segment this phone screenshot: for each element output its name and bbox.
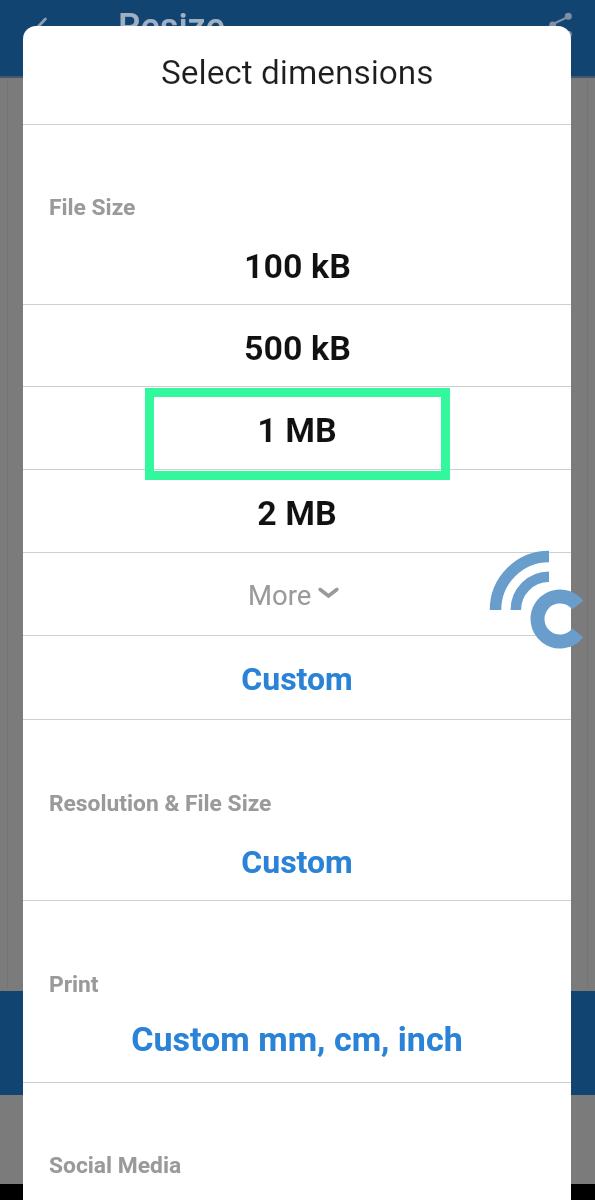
button[interactable]: 100 kB: [23, 125, 571, 304]
staticText: File Size: [49, 194, 136, 221]
staticText: 100 kB: [244, 246, 351, 286]
button[interactable]: Custom: [23, 720, 571, 900]
staticText: 1 MB: [257, 410, 337, 450]
button[interactable]: Custom mm, cm, inch: [23, 901, 571, 1082]
staticText: Resize: [118, 6, 225, 48]
staticText: Print: [49, 971, 99, 998]
staticText: Custom mm, cm, inch: [131, 1019, 463, 1059]
staticText: Custom: [241, 660, 353, 698]
staticText: Social Media: [49, 1152, 182, 1179]
button[interactable]: 500 kB: [23, 305, 571, 386]
button[interactable]: 2 MB: [23, 470, 571, 552]
staticText: Resolution & File Size: [49, 790, 272, 817]
button[interactable]: Custom: [23, 636, 571, 719]
button[interactable]: More: [23, 553, 571, 636]
staticText: Select dimensions: [161, 53, 434, 92]
staticText: 500 kB: [244, 328, 351, 368]
staticText: More: [248, 579, 312, 611]
button[interactable]: Back: [15, 6, 65, 56]
staticText: 2 MB: [257, 493, 337, 533]
staticText: Custom: [241, 843, 353, 881]
button[interactable]: Share: [538, 2, 584, 48]
button[interactable]: 1 MB: [23, 387, 571, 469]
